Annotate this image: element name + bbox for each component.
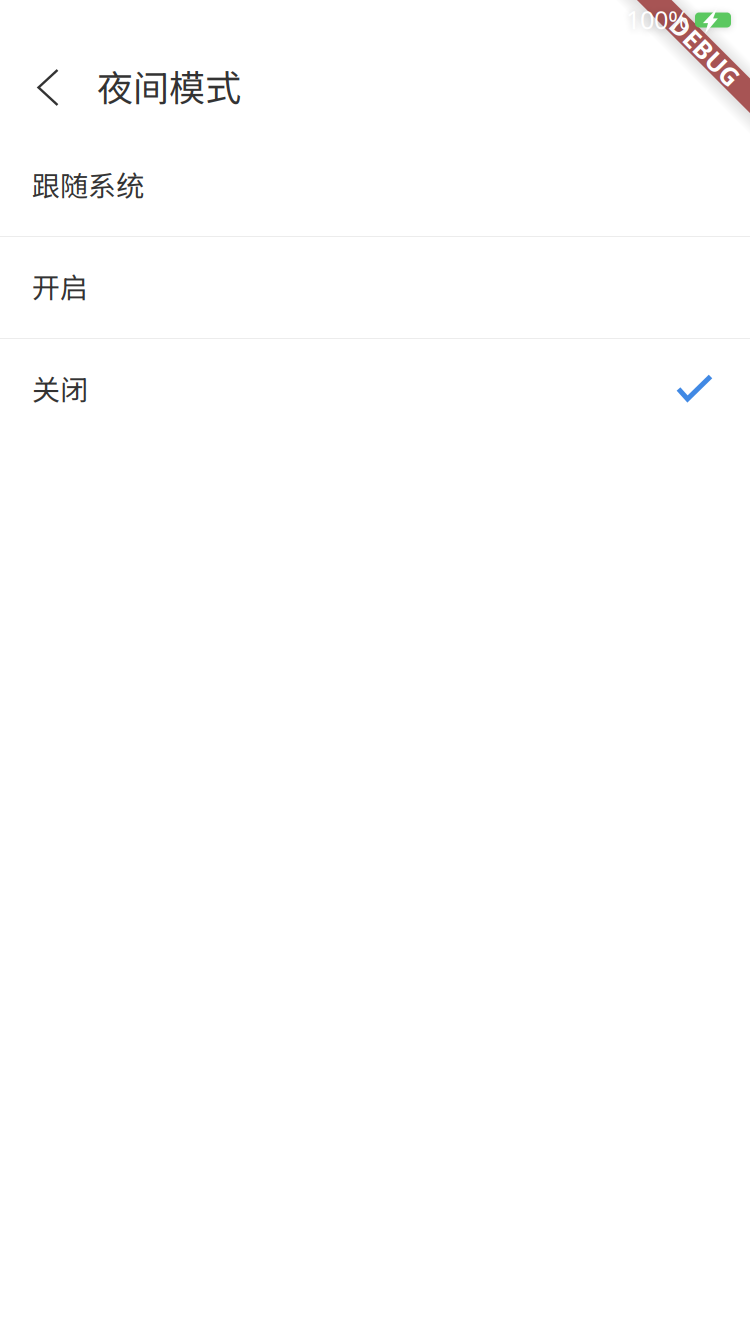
button[interactable]: 跟随系统 — [0, 135, 750, 236]
staticText: 关闭 — [32, 368, 88, 408]
button[interactable]: 关闭 — [0, 339, 750, 440]
staticText: DEBUG — [661, 33, 748, 68]
staticText: 夜间模式 — [97, 59, 241, 111]
button[interactable]: Back — [0, 40, 97, 135]
staticText: 100% — [626, 2, 689, 37]
staticText: 开启 — [32, 266, 88, 306]
button[interactable]: 开启 — [0, 237, 750, 338]
staticText: 跟随系统 — [32, 164, 144, 204]
